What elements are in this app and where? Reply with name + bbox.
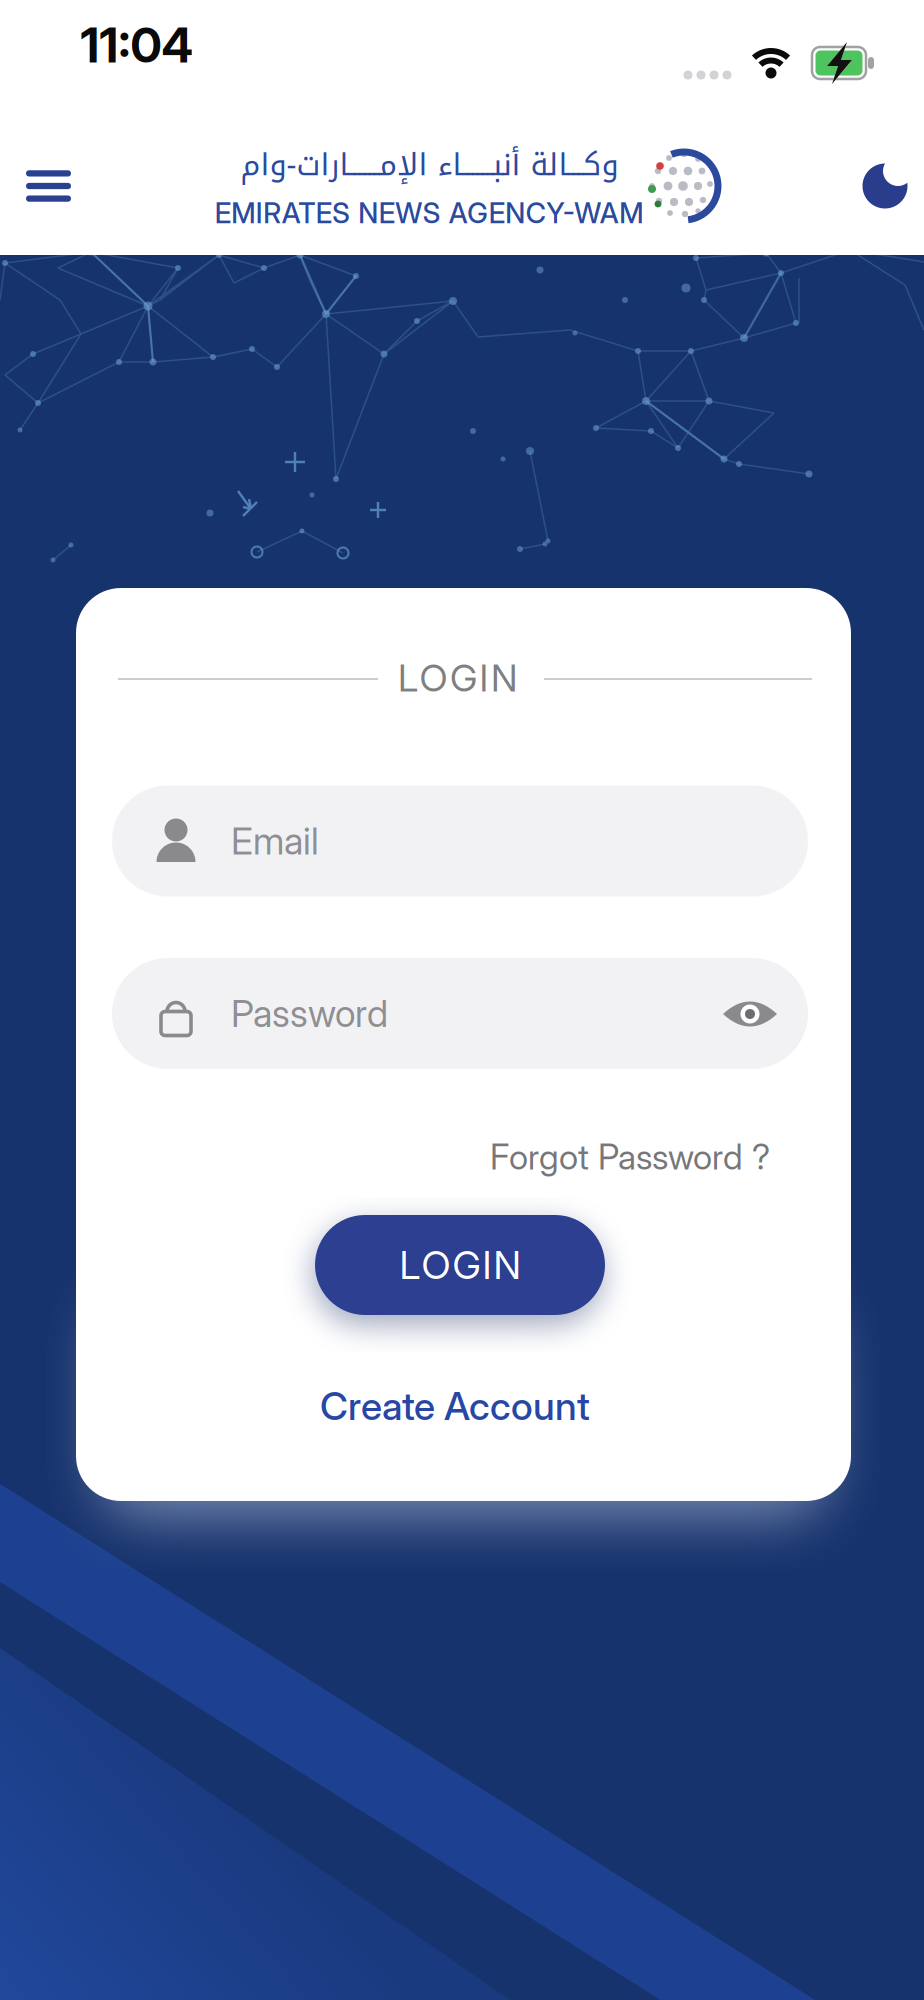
staticText: وكـــالة أنبــــــاء الإمــــــارات-وام xyxy=(240,136,618,194)
staticText: Forgot Password ? xyxy=(490,1136,770,1178)
button[interactable]: LOGIN xyxy=(315,1215,605,1315)
button[interactable]: Forgot Password ? xyxy=(490,1136,770,1178)
staticText: Create Account xyxy=(320,1383,590,1429)
button[interactable]: Dark mode xyxy=(857,158,913,214)
button[interactable]: Password xyxy=(112,958,808,1069)
staticText: EMIRATES NEWS AGENCY-WAM xyxy=(215,196,643,230)
button[interactable]: Menu xyxy=(13,156,83,216)
staticText: LOGIN xyxy=(398,655,518,701)
button[interactable]: Create Account xyxy=(320,1383,590,1429)
staticText: Password xyxy=(231,991,388,1036)
staticText: LOGIN xyxy=(399,1242,520,1288)
staticText: Email xyxy=(231,818,319,864)
button[interactable]: Show password xyxy=(714,986,786,1042)
button[interactable]: Email xyxy=(112,785,808,896)
button[interactable]: Emirates News Agency WAM xyxy=(119,136,739,230)
staticText: 11:04 xyxy=(80,16,193,74)
